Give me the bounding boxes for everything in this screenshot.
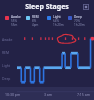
staticText: Light (53, 15, 61, 19)
staticText: 3 am (34, 92, 62, 97)
staticText: Light (2, 63, 11, 68)
button[interactable]: Light (47, 15, 68, 27)
staticText: Awake (11, 15, 21, 19)
staticText: 70% (74, 19, 80, 23)
staticText: REM (2, 50, 10, 55)
staticText: 64% (53, 19, 59, 23)
staticText: 1h 20m (53, 23, 64, 27)
button[interactable]: Awake (5, 15, 26, 27)
staticText: Awake (2, 37, 13, 42)
staticText: REM (32, 15, 39, 19)
button[interactable]: More options (81, 2, 90, 11)
button[interactable]: Deep (68, 15, 89, 27)
staticText: 1h 20m (74, 23, 85, 27)
staticText: Deep (2, 76, 11, 81)
staticText: Sleep Stages (25, 2, 69, 12)
staticText: 55m (11, 23, 18, 27)
staticText: Deep (74, 15, 82, 19)
staticText: 10:30 pm (5, 92, 34, 97)
staticText: 7:15 am (62, 92, 90, 97)
staticText: 8% (32, 19, 37, 23)
staticText: 55% (11, 19, 17, 23)
button[interactable]: REM (26, 15, 47, 27)
staticText: 4pm (32, 23, 39, 27)
